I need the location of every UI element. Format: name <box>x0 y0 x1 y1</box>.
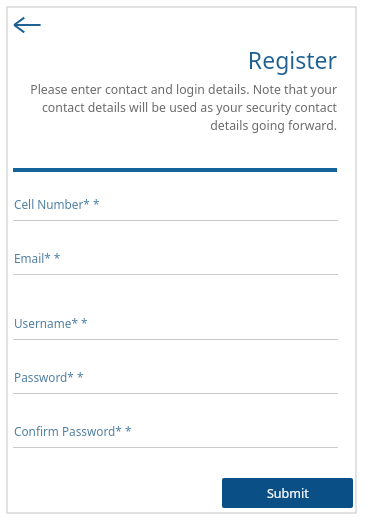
staticText: Username* * <box>14 315 88 331</box>
staticText: Cell Number* * <box>14 196 100 212</box>
staticText: Password* * <box>14 369 84 385</box>
button[interactable]: Password* * <box>13 369 338 386</box>
button[interactable]: Confirm Password* * <box>13 423 338 440</box>
button[interactable]: Cell Number* * <box>13 196 338 213</box>
staticText: Confirm Password* * <box>14 423 132 439</box>
button[interactable]: Email* * <box>13 250 338 267</box>
button[interactable]: Back <box>10 12 44 38</box>
button[interactable]: Submit <box>222 478 353 508</box>
button[interactable]: Username* * <box>13 315 338 332</box>
staticText: Submit <box>267 485 309 502</box>
staticText: Register <box>0 44 337 75</box>
staticText: Email* * <box>14 250 61 266</box>
staticText: Please enter contact and login details. … <box>26 81 337 134</box>
